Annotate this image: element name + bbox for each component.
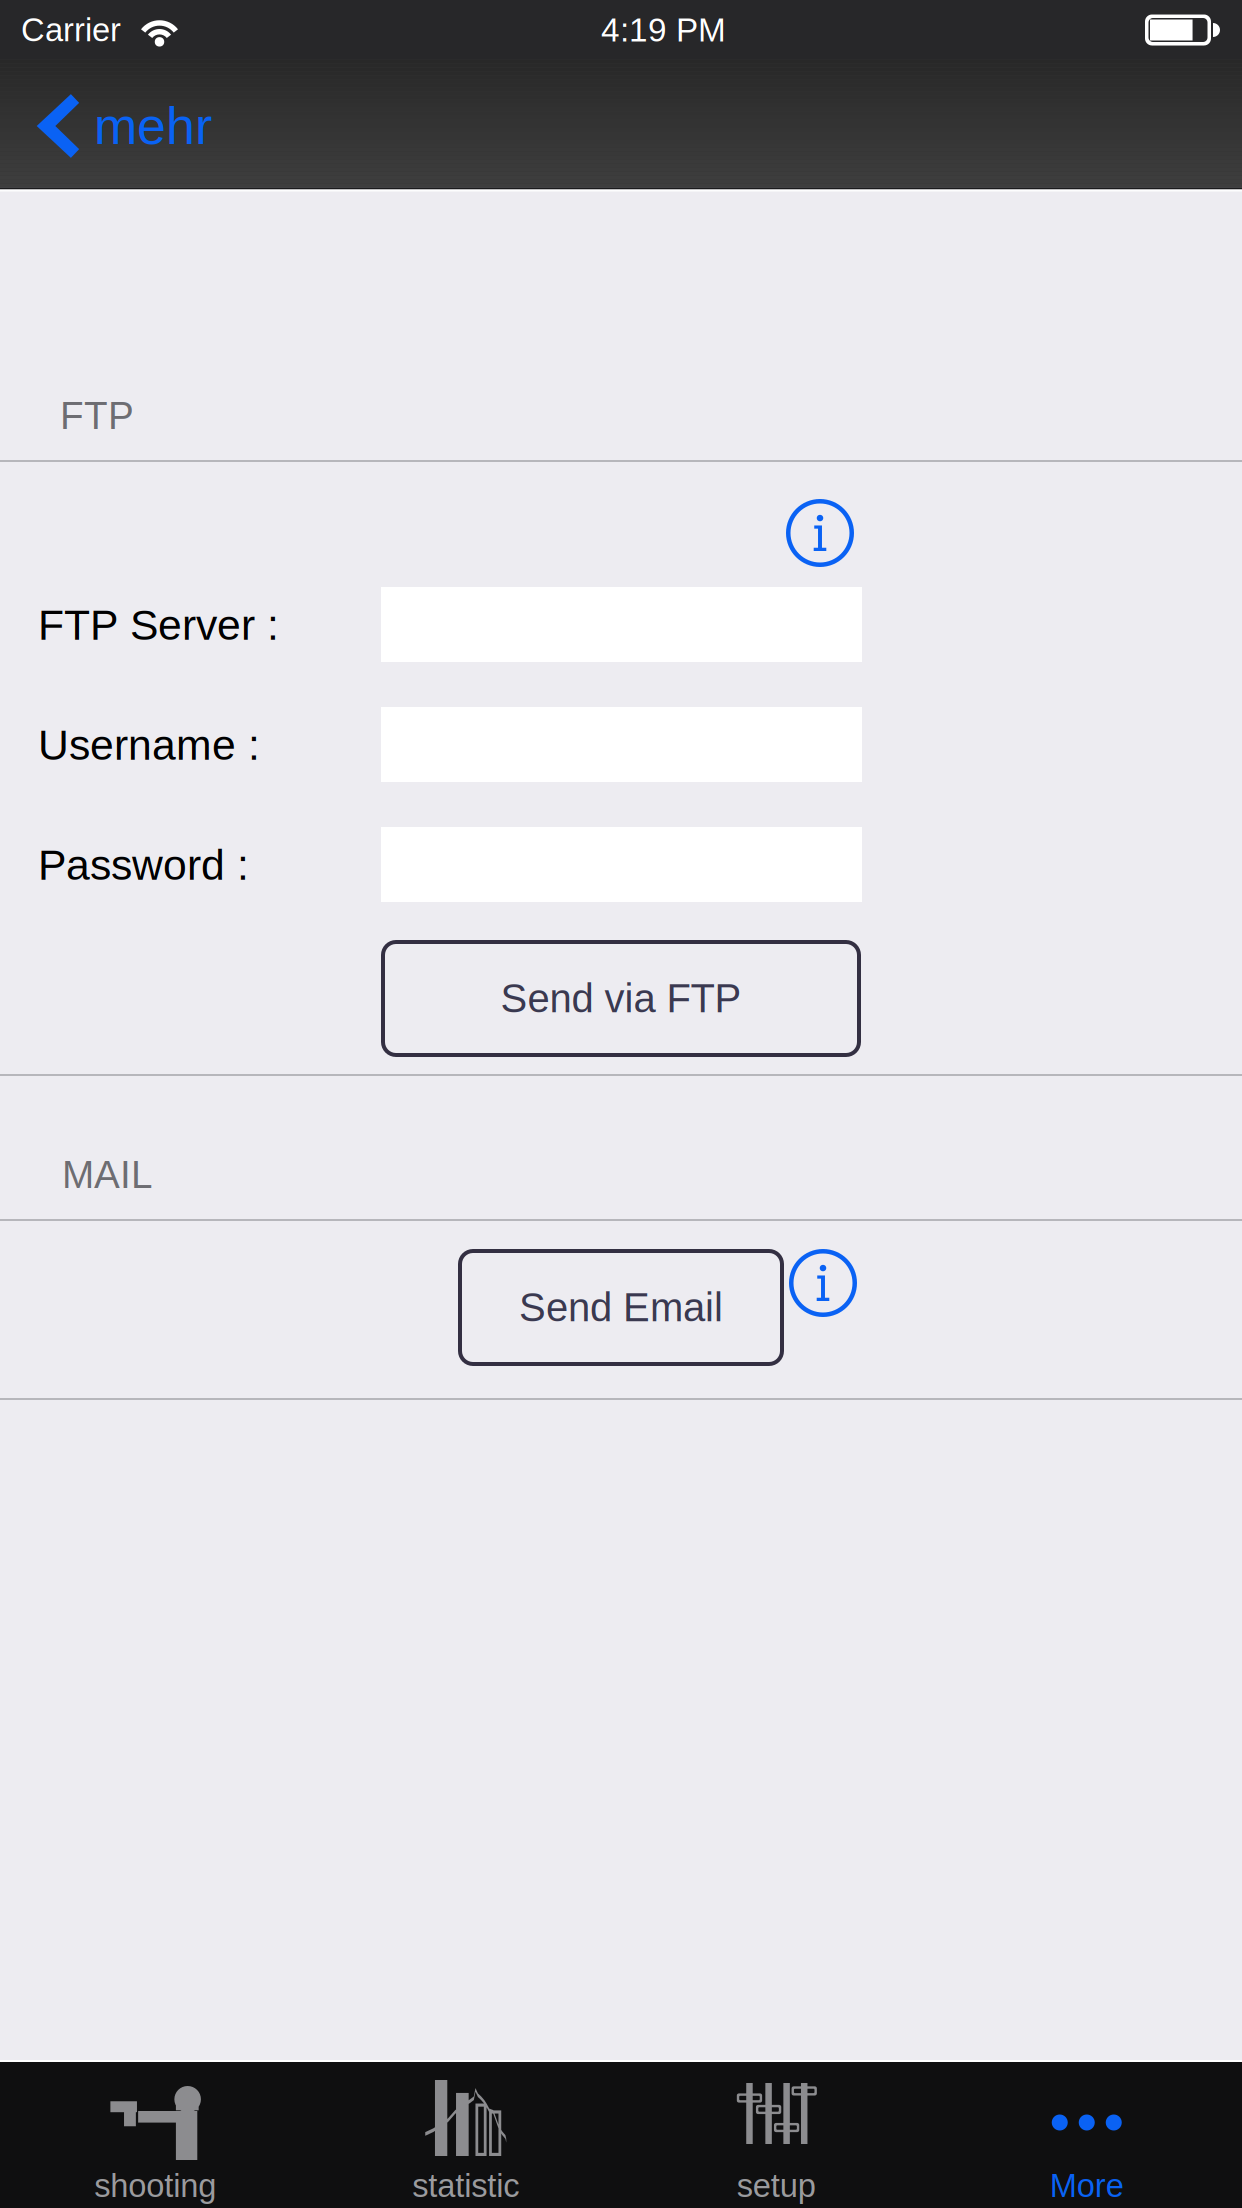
button[interactable]: Send Email xyxy=(458,1249,784,1366)
button[interactable]: shooting xyxy=(0,2062,310,2208)
staticText: FTP Server : xyxy=(38,601,279,649)
staticText: Send via FTP xyxy=(500,976,741,1021)
button[interactable]: Info xyxy=(778,1238,868,1328)
staticText: Carrier xyxy=(21,12,121,48)
staticText: 4:19 PM xyxy=(601,11,726,49)
staticText: shooting xyxy=(94,2167,216,2204)
button[interactable]: statistic xyxy=(310,2062,621,2208)
staticText: Username : xyxy=(38,721,260,769)
staticText: setup xyxy=(737,2167,816,2204)
staticText: statistic xyxy=(412,2167,519,2204)
staticText: Password : xyxy=(38,841,249,889)
staticText: FTP xyxy=(60,394,134,437)
staticText: mehr xyxy=(94,97,212,155)
staticText: More xyxy=(1050,2167,1124,2204)
button[interactable]: Info xyxy=(775,488,865,578)
staticText: MAIL xyxy=(62,1153,153,1196)
button[interactable]: setup xyxy=(621,2062,931,2208)
staticText: Send Email xyxy=(519,1285,723,1330)
button[interactable]: Send via FTP xyxy=(381,940,861,1057)
button[interactable]: mehr xyxy=(0,59,300,192)
button[interactable]: More xyxy=(931,2062,1242,2208)
